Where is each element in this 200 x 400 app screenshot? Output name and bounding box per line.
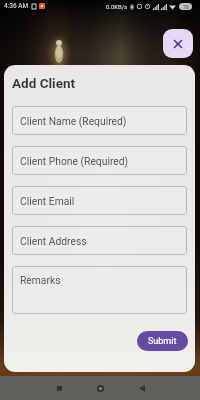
staticText: Add Client — [12, 75, 76, 91]
button[interactable]: Client Name (Required) — [12, 106, 187, 135]
staticText: Client Address — [20, 235, 87, 247]
button[interactable]: Client Phone (Required) — [12, 146, 187, 175]
staticText: 78 — [183, 4, 189, 10]
staticText: Client Name (Required) — [20, 115, 127, 127]
button[interactable]: Client Email — [12, 186, 187, 215]
button[interactable]: Remarks — [12, 266, 187, 314]
button[interactable]: Client Address — [12, 226, 187, 255]
staticText: Client Phone (Required) — [20, 155, 129, 167]
staticText: Remarks — [20, 274, 61, 286]
button[interactable]: Close — [163, 29, 193, 58]
button[interactable]: Submit — [137, 331, 188, 351]
staticText: Client Email — [20, 195, 75, 207]
staticText: 4:36 AM — [4, 2, 29, 10]
button[interactable]: Back — [121, 376, 162, 400]
staticText: 0.0KB/s — [106, 3, 128, 10]
button[interactable]: Home — [80, 376, 121, 400]
button[interactable]: Recent apps — [39, 376, 80, 400]
staticText: Submit — [148, 336, 177, 347]
